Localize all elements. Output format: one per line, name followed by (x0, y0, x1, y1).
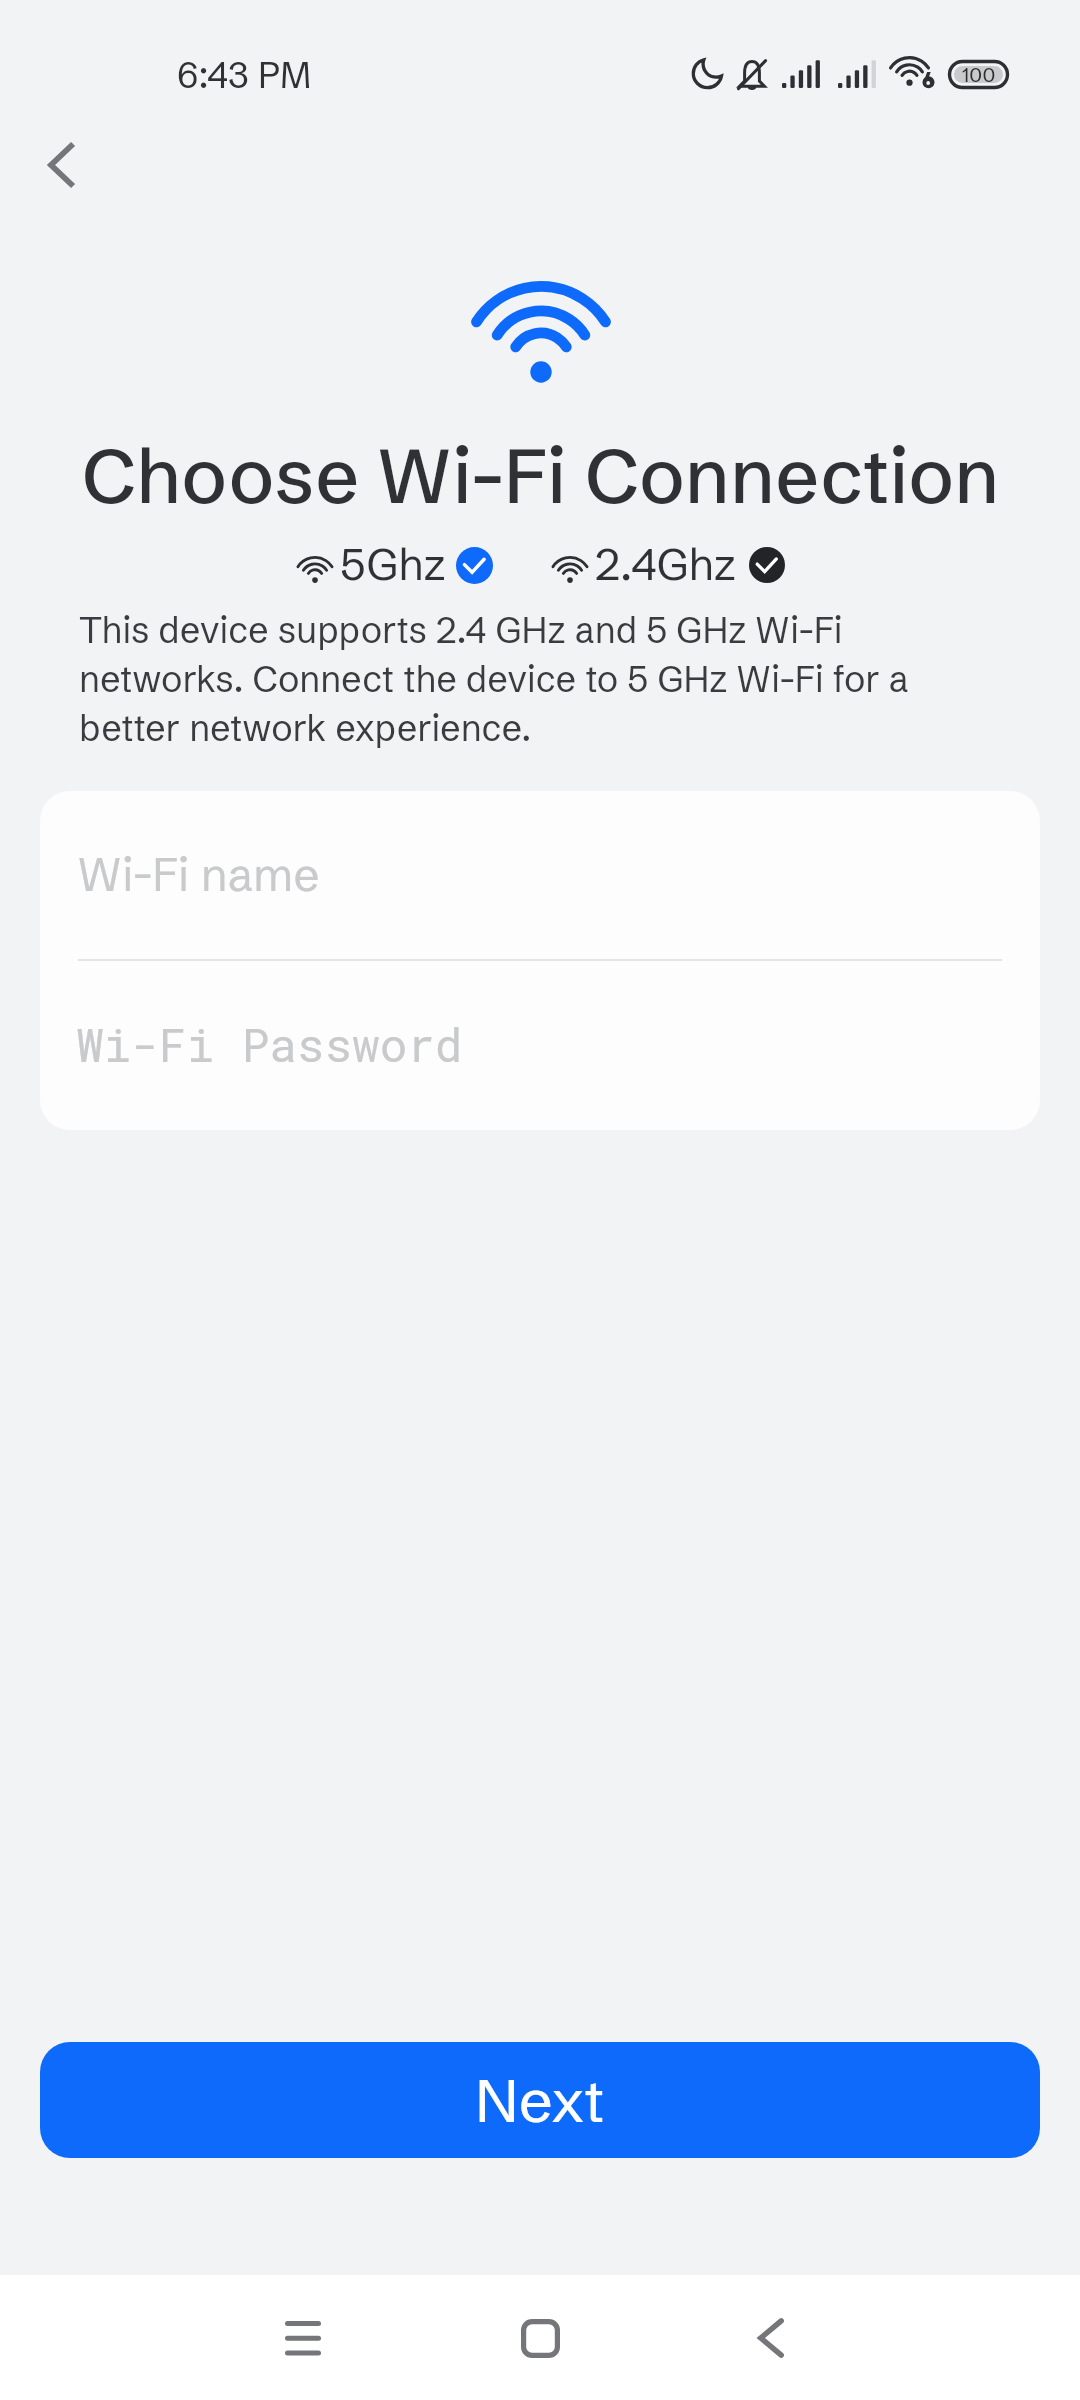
staticText: 2.4Ghz (595, 537, 736, 591)
staticText: Wi-Fi Password (76, 1014, 463, 1075)
button[interactable]: Next (40, 2042, 1040, 2158)
button[interactable]: Wi-Fi Password (40, 961, 1040, 1130)
staticText: Wi-Fi name (78, 846, 320, 903)
button[interactable]: Back (16, 120, 106, 210)
staticText: 5Ghz (340, 537, 446, 591)
staticText: Choose Wi-Fi Connection (82, 428, 1000, 522)
button[interactable]: Recent apps (243, 2278, 363, 2398)
button[interactable]: Wi-Fi name (40, 791, 1040, 960)
staticText: Next (475, 2063, 605, 2137)
staticText: 6:43 PM (177, 53, 312, 97)
button[interactable]: Home (480, 2278, 600, 2398)
staticText: This device supports 2.4 GHz and 5 GHz W… (79, 608, 959, 750)
button[interactable]: Back (711, 2278, 831, 2398)
staticText: 100 (962, 61, 996, 87)
